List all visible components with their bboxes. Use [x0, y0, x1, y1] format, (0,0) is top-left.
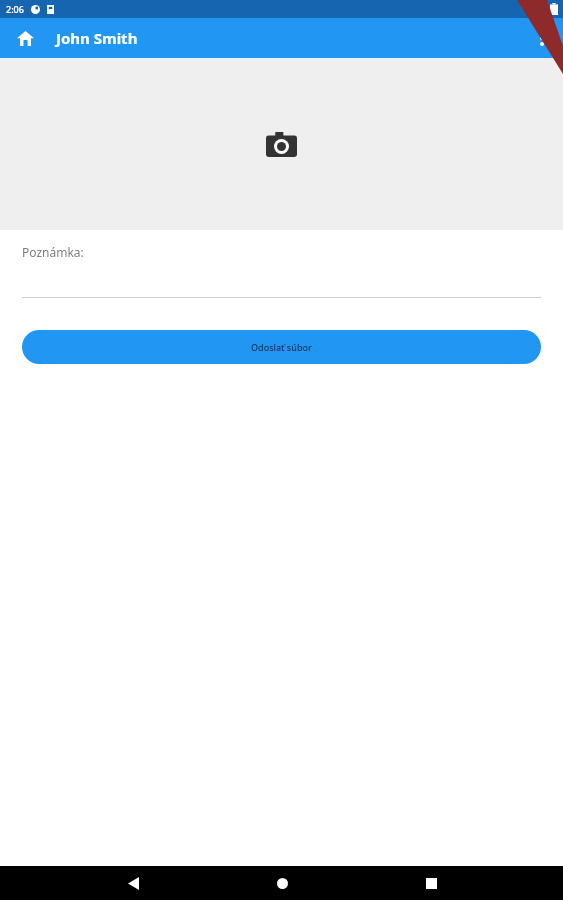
button[interactable]: More options — [525, 21, 559, 55]
button[interactable]: Take photo — [0, 58, 563, 230]
staticText: Odoslať súbor — [251, 341, 312, 353]
button[interactable]: Back — [116, 866, 150, 900]
button[interactable]: Recent apps — [414, 866, 448, 900]
button[interactable]: Odoslať súbor — [22, 330, 541, 364]
staticText: 2:06 — [6, 3, 24, 15]
staticText: John Smith — [56, 28, 138, 48]
button[interactable]: Home — [10, 23, 40, 53]
button[interactable]: Home — [265, 866, 299, 900]
staticText: Poznámka: — [22, 244, 84, 260]
button[interactable] — [22, 284, 541, 298]
